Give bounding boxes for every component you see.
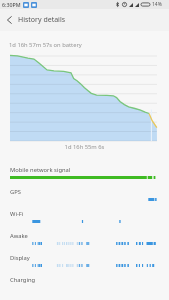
staticText: 6:30PM bbox=[2, 1, 21, 8]
button[interactable]: Charging bbox=[0, 276, 169, 298]
button[interactable]: Back bbox=[0, 9, 18, 31]
button[interactable]: GPS bbox=[0, 188, 169, 210]
staticText: 1d 16h 55m 6s bbox=[0, 143, 169, 151]
button[interactable]: Mobile network signal bbox=[0, 166, 169, 188]
staticText: Awake bbox=[10, 232, 28, 240]
staticText: Charging bbox=[10, 276, 36, 284]
button[interactable]: Display bbox=[0, 254, 169, 276]
staticText: Wi-Fi bbox=[10, 210, 24, 218]
staticText: Mobile network signal bbox=[10, 166, 71, 174]
button[interactable]: Wi-Fi bbox=[0, 210, 169, 232]
button[interactable]: Awake bbox=[0, 232, 169, 254]
staticText: Display bbox=[10, 254, 30, 262]
staticText: GPS bbox=[10, 188, 21, 196]
staticText: 1d 16h 57m 57s on battery bbox=[9, 41, 82, 49]
staticText: 14% bbox=[152, 1, 162, 8]
staticText: History details bbox=[18, 15, 66, 25]
